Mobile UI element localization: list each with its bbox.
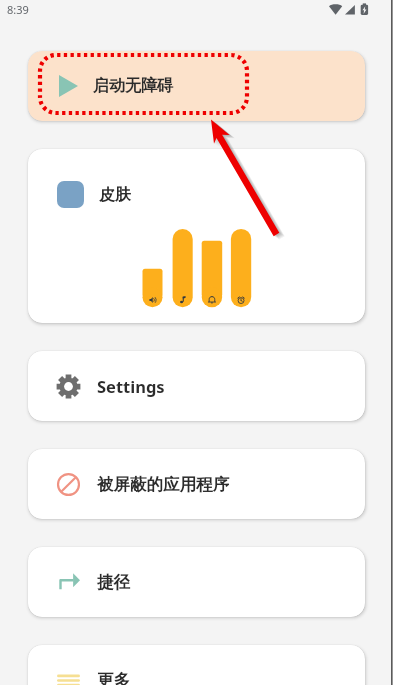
button[interactable]: Skin: [28, 149, 365, 323]
staticText: 皮肤: [99, 185, 131, 205]
staticText: 更多: [97, 670, 130, 685]
staticText: Settings: [97, 375, 165, 397]
staticText: 捷径: [97, 572, 130, 593]
staticText: 8:39: [7, 2, 29, 17]
button[interactable]: Start accessibility: [28, 51, 365, 121]
button[interactable]: Settings: [28, 351, 365, 421]
button[interactable]: More: [28, 645, 365, 685]
staticText: 被屏蔽的应用程序: [97, 474, 229, 495]
staticText: 启动无障碍: [93, 76, 173, 96]
button[interactable]: Blocked apps: [28, 449, 365, 519]
button[interactable]: Shortcuts: [28, 547, 365, 617]
